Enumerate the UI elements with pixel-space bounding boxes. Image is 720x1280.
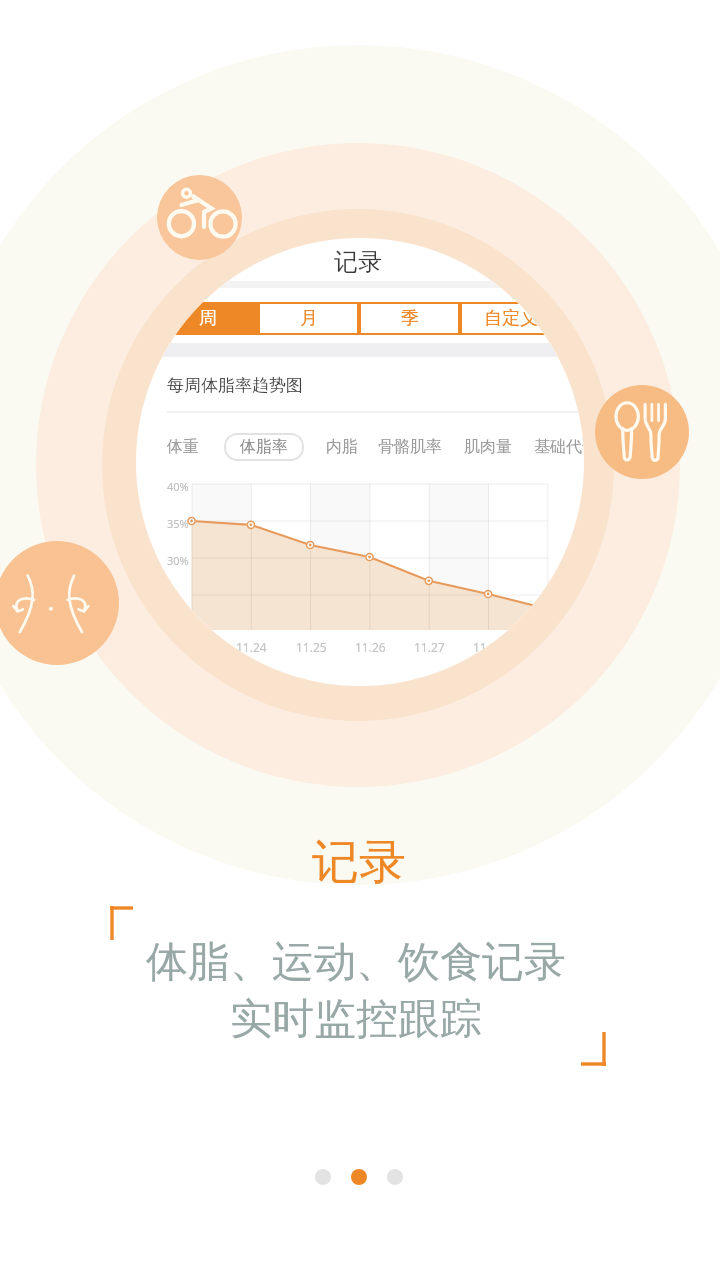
staticText: 体脂、运动、饮食记录 实时监控跟踪 xyxy=(146,936,566,1045)
staticText: 记录 xyxy=(312,833,406,892)
staticText: 体重 xyxy=(167,437,199,457)
staticText: 自定义 xyxy=(484,307,538,330)
staticText: 记录 xyxy=(334,247,382,277)
button[interactable]: 自定义 xyxy=(460,302,561,335)
staticText: 周 xyxy=(199,307,217,330)
button[interactable]: 内脂 xyxy=(326,437,358,457)
button[interactable]: 体脂率 xyxy=(240,437,288,457)
staticText: 11.28 xyxy=(473,639,504,655)
staticText: 月 xyxy=(300,307,318,330)
staticText: 内脂 xyxy=(326,437,358,457)
button[interactable]: Body shape xyxy=(0,541,119,665)
staticText: 季 xyxy=(401,307,419,330)
staticText: 肌肉量 xyxy=(464,437,512,457)
button[interactable]: Exercise xyxy=(157,175,242,260)
staticText: 每周体脂率趋势图 xyxy=(167,375,303,396)
button[interactable]: 骨骼肌率 xyxy=(378,437,442,457)
staticText: 11.26 xyxy=(355,639,386,655)
staticText: 体脂率 xyxy=(240,437,288,457)
staticText: 11.25 xyxy=(296,639,327,655)
staticText: 骨骼肌率 xyxy=(378,437,442,457)
staticText: 11.27 xyxy=(414,639,445,655)
button[interactable]: 体重 xyxy=(167,437,199,457)
button[interactable] xyxy=(315,1169,331,1185)
button[interactable]: 年 xyxy=(561,302,584,335)
staticText: 基础代谢 xyxy=(534,437,584,457)
staticText: 40% xyxy=(167,479,189,494)
button[interactable] xyxy=(351,1169,367,1185)
staticText: 35% xyxy=(167,516,189,531)
staticText: 11.24 xyxy=(236,639,267,655)
button[interactable]: 肌肉量 xyxy=(464,437,512,457)
button[interactable] xyxy=(387,1169,403,1185)
button[interactable]: 基础代谢 xyxy=(534,437,584,457)
button[interactable]: 月 xyxy=(258,302,359,335)
staticText: 30% xyxy=(167,553,189,568)
button[interactable]: Diet xyxy=(595,385,689,479)
button[interactable]: 周 xyxy=(157,302,258,335)
button[interactable]: 季 xyxy=(359,302,460,335)
